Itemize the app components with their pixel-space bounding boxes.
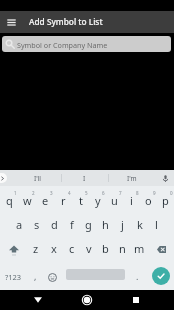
button[interactable]: c xyxy=(63,234,80,258)
staticText: p xyxy=(162,193,169,208)
button[interactable]: h xyxy=(97,210,114,234)
button[interactable]: Enter xyxy=(143,258,174,290)
staticText: 5 xyxy=(85,190,88,196)
button[interactable]: b xyxy=(97,234,114,258)
staticText: q xyxy=(6,193,13,208)
staticText: a xyxy=(16,217,23,232)
button[interactable]: s xyxy=(28,210,46,234)
button[interactable]: l xyxy=(148,210,165,234)
button[interactable]: I'll xyxy=(14,170,61,186)
button[interactable]: Backspace xyxy=(148,234,174,258)
button[interactable]: j xyxy=(114,210,131,234)
staticText: j xyxy=(121,217,124,232)
staticText: l xyxy=(155,217,158,232)
button[interactable]: Shift xyxy=(0,234,27,258)
staticText: y xyxy=(95,193,101,208)
staticText: z xyxy=(33,241,39,256)
staticText: b xyxy=(102,241,109,256)
button[interactable]: Home xyxy=(74,290,99,310)
button[interactable]: v xyxy=(80,234,97,258)
button[interactable]: u xyxy=(106,186,123,210)
staticText: Symbol or Company Name xyxy=(17,40,108,50)
button[interactable]: Menu xyxy=(2,13,20,31)
staticText: c xyxy=(69,241,75,256)
staticText: I'll xyxy=(34,174,42,183)
staticText: ?123 xyxy=(5,272,22,282)
button[interactable]: a xyxy=(10,210,28,234)
staticText: o xyxy=(145,193,152,208)
staticText: r xyxy=(61,193,66,208)
button[interactable]: t xyxy=(72,186,89,210)
staticText: 1 xyxy=(14,190,17,196)
staticText: 0 xyxy=(170,190,173,196)
staticText: g xyxy=(85,217,92,232)
staticText: w xyxy=(23,193,32,208)
staticText: u xyxy=(111,193,118,208)
button[interactable]: Emoji xyxy=(45,258,59,290)
button[interactable]: i xyxy=(123,186,140,210)
staticText: k xyxy=(137,217,143,232)
button[interactable]: n xyxy=(114,234,131,258)
button[interactable]: More suggestions xyxy=(0,173,7,183)
button[interactable]: Symbol or Company Name xyxy=(2,36,171,52)
button[interactable]: q xyxy=(0,186,18,210)
button[interactable]: Space xyxy=(59,258,132,290)
button[interactable]: , xyxy=(26,258,45,290)
button[interactable]: ?123 xyxy=(0,258,26,290)
staticText: v xyxy=(86,241,92,256)
button[interactable]: m xyxy=(131,234,148,258)
button[interactable]: k xyxy=(131,210,148,234)
staticText: d xyxy=(51,217,58,232)
button[interactable]: r xyxy=(54,186,72,210)
staticText: I xyxy=(83,174,86,183)
staticText: 9 xyxy=(153,190,156,196)
staticText: h xyxy=(102,217,109,232)
staticText: 8 xyxy=(136,190,139,196)
staticText: x xyxy=(51,241,57,256)
staticText: 6 xyxy=(102,190,105,196)
staticText: I'm xyxy=(127,174,137,183)
button[interactable]: y xyxy=(89,186,106,210)
staticText: i xyxy=(130,193,133,208)
button[interactable]: e xyxy=(36,186,54,210)
button[interactable]: f xyxy=(63,210,80,234)
button[interactable]: g xyxy=(80,210,97,234)
staticText: 4 xyxy=(68,190,71,196)
button[interactable]: p xyxy=(157,186,174,210)
staticText: . xyxy=(136,270,139,282)
button[interactable]: Back xyxy=(25,290,50,310)
staticText: t xyxy=(79,193,83,208)
button[interactable]: I xyxy=(61,170,108,186)
staticText: s xyxy=(34,217,40,232)
button[interactable]: Recent apps xyxy=(123,290,148,310)
button[interactable]: d xyxy=(46,210,63,234)
staticText: Add Symbol to List xyxy=(29,16,103,27)
button[interactable]: . xyxy=(132,258,143,290)
staticText: 3 xyxy=(50,190,53,196)
staticText: 7 xyxy=(119,190,122,196)
button[interactable]: Voice input xyxy=(157,170,173,186)
staticText: f xyxy=(70,217,74,232)
button[interactable]: w xyxy=(18,186,36,210)
button[interactable]: x xyxy=(45,234,63,258)
staticText: m xyxy=(134,241,145,256)
staticText: n xyxy=(119,241,126,256)
staticText: e xyxy=(42,193,49,208)
staticText: 2 xyxy=(32,190,35,196)
button[interactable]: I'm xyxy=(108,170,155,186)
button[interactable]: o xyxy=(140,186,157,210)
button[interactable]: z xyxy=(27,234,45,258)
staticText: , xyxy=(34,270,37,282)
